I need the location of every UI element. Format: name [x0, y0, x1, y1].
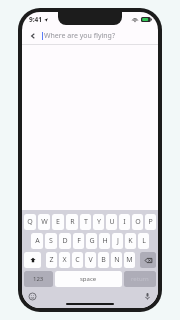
- staticText: W: [41, 217, 48, 227]
- staticText: Z: [49, 255, 54, 265]
- staticText: G: [89, 236, 95, 246]
- staticText: D: [62, 236, 68, 246]
- staticText: N: [114, 255, 120, 265]
- staticText: R: [70, 217, 75, 227]
- button[interactable]: T: [80, 214, 91, 230]
- button[interactable]: R: [66, 214, 78, 230]
- button[interactable]: V: [85, 252, 96, 268]
- button[interactable]: Z: [46, 252, 57, 268]
- staticText: U: [109, 217, 115, 227]
- button[interactable]: Y: [93, 214, 104, 230]
- button[interactable]: Where are you flying?: [42, 28, 153, 43]
- button[interactable]: Back: [27, 30, 39, 42]
- button[interactable]: A: [31, 233, 43, 249]
- staticText: K: [128, 236, 133, 246]
- button[interactable]: C: [72, 252, 83, 268]
- button[interactable]: Shift: [24, 252, 41, 268]
- button[interactable]: return: [124, 271, 156, 287]
- staticText: C: [75, 255, 80, 265]
- button[interactable]: Emoji: [27, 291, 38, 302]
- staticText: Where are you flying?: [44, 31, 115, 41]
- button[interactable]: F: [73, 233, 84, 249]
- staticText: A: [35, 236, 40, 246]
- staticText: B: [101, 255, 106, 265]
- button[interactable]: Q: [24, 214, 36, 230]
- staticText: space: [80, 275, 97, 283]
- staticText: J: [117, 236, 119, 246]
- staticText: H: [102, 236, 108, 246]
- staticText: Y: [97, 217, 101, 227]
- staticText: F: [77, 236, 81, 246]
- button[interactable]: S: [45, 233, 57, 249]
- staticText: 123: [33, 275, 44, 283]
- staticText: S: [49, 236, 53, 246]
- staticText: L: [142, 236, 146, 246]
- staticText: X: [62, 255, 67, 265]
- staticText: T: [84, 217, 88, 227]
- button[interactable]: Dictation: [142, 291, 153, 302]
- staticText: Q: [27, 217, 33, 227]
- staticText: P: [148, 217, 153, 227]
- button[interactable]: space: [55, 271, 122, 287]
- button[interactable]: P: [145, 214, 156, 230]
- staticText: I: [123, 217, 126, 227]
- button[interactable]: Backspace: [140, 252, 156, 268]
- button[interactable]: E: [52, 214, 64, 230]
- staticText: E: [56, 217, 60, 227]
- button[interactable]: N: [111, 252, 122, 268]
- button[interactable]: M: [124, 252, 135, 268]
- button[interactable]: I: [119, 214, 130, 230]
- staticText: return: [131, 275, 149, 283]
- staticText: 9:41: [29, 15, 42, 24]
- button[interactable]: G: [86, 233, 97, 249]
- button[interactable]: O: [132, 214, 143, 230]
- staticText: O: [135, 217, 141, 227]
- button[interactable]: U: [106, 214, 117, 230]
- button[interactable]: D: [59, 233, 71, 249]
- button[interactable]: 123: [24, 271, 53, 287]
- button[interactable]: B: [98, 252, 109, 268]
- button[interactable]: L: [138, 233, 149, 249]
- button[interactable]: K: [125, 233, 136, 249]
- staticText: V: [88, 255, 93, 265]
- button[interactable]: J: [112, 233, 123, 249]
- button[interactable]: W: [38, 214, 50, 230]
- button[interactable]: X: [59, 252, 70, 268]
- staticText: M: [126, 255, 133, 265]
- button[interactable]: H: [99, 233, 110, 249]
